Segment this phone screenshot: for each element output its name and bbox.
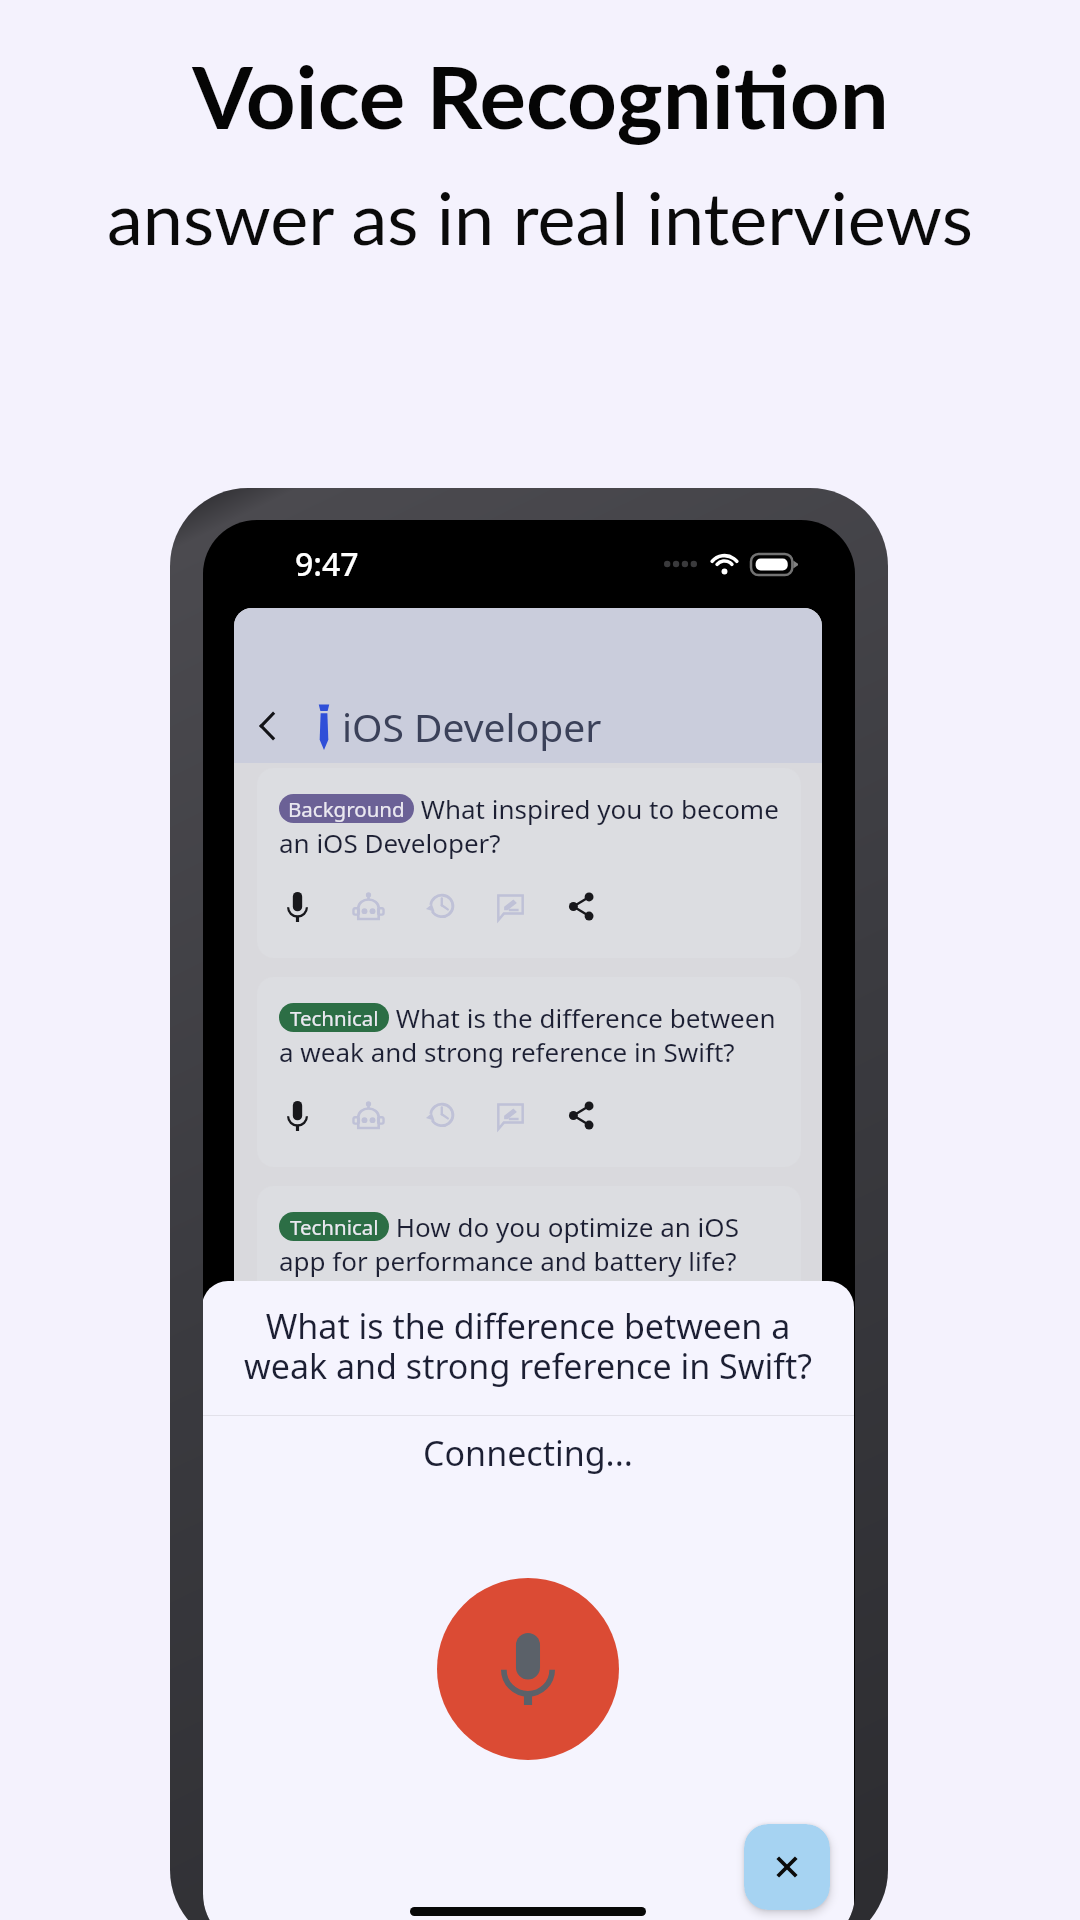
staticText: Technical (290, 1213, 379, 1241)
button[interactable]: Close (744, 1824, 830, 1910)
staticText: Voice Recognition (192, 43, 889, 147)
staticText: What is the difference between a weak an… (238, 1303, 818, 1389)
staticText: answer as in real interviews (107, 174, 973, 260)
button[interactable]: History (421, 1097, 458, 1134)
button[interactable]: Notes (492, 888, 529, 925)
staticText: Background (288, 795, 405, 823)
button[interactable]: History (421, 888, 458, 925)
button[interactable]: Record answer (279, 1097, 316, 1134)
staticText: Technical How do you optimize an iOS app… (279, 1209, 781, 1279)
button[interactable]: Start recording (437, 1578, 619, 1760)
button[interactable]: Back (243, 702, 291, 750)
staticText: 9:47 (295, 542, 359, 586)
staticText: Technical What is the difference between… (279, 1000, 781, 1070)
staticText: Connecting... (203, 1430, 854, 1476)
button[interactable]: Share (563, 1306, 600, 1343)
button[interactable]: AI answer (350, 1306, 387, 1343)
button[interactable]: Share (563, 888, 600, 925)
button[interactable]: Record answer (279, 1306, 316, 1343)
button[interactable]: Background What inspired you to become a… (257, 768, 801, 958)
button[interactable]: Technical What is the difference between… (257, 977, 801, 1167)
button[interactable]: Record answer (279, 888, 316, 925)
button[interactable]: AI answer (350, 1097, 387, 1134)
staticText: Technical (290, 1004, 379, 1032)
button[interactable]: AI answer (350, 888, 387, 925)
staticText: iOS Developer (342, 700, 602, 753)
button[interactable]: Notes (492, 1097, 529, 1134)
staticText: Background What inspired you to become a… (279, 791, 781, 861)
button[interactable]: Notes (492, 1306, 529, 1343)
button[interactable]: Share (563, 1097, 600, 1134)
button[interactable]: Technical How do you optimize an iOS app… (257, 1186, 801, 1376)
button[interactable]: History (421, 1306, 458, 1343)
